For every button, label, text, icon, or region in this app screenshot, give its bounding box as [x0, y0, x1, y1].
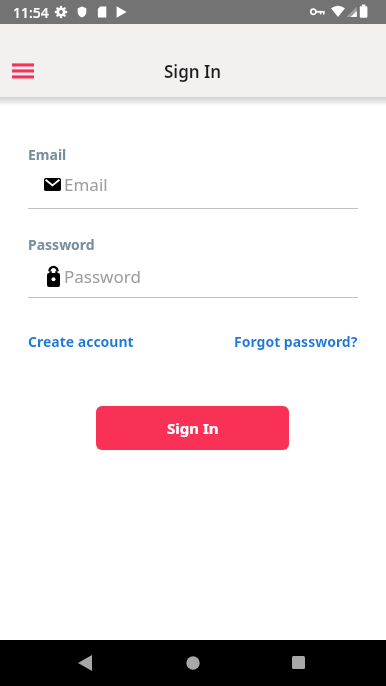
staticText: Sign In [164, 60, 222, 83]
button[interactable] [292, 656, 305, 669]
button[interactable]: Email [28, 170, 358, 209]
button[interactable] [186, 656, 200, 670]
staticText: Sign In [167, 418, 219, 438]
button[interactable]: Create account [28, 332, 134, 351]
button[interactable] [78, 655, 92, 671]
button[interactable] [12, 63, 34, 79]
button[interactable]: Forgot password? [234, 332, 358, 351]
staticText: Create account [28, 332, 134, 351]
staticText: Forgot password? [234, 332, 358, 351]
staticText: Password [64, 265, 141, 288]
staticText: Email [64, 173, 108, 196]
staticText: 11:54 [13, 3, 49, 22]
staticText: Email [28, 145, 67, 164]
button[interactable]: Password [28, 260, 358, 298]
button[interactable]: Sign In [96, 406, 289, 450]
staticText: Password [28, 235, 95, 254]
